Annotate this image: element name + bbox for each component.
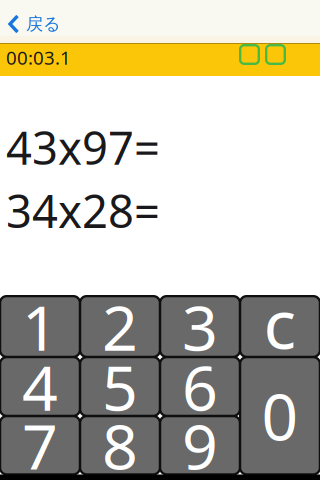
button[interactable]: 7 [0,416,80,474]
staticText: 7 [22,404,58,480]
staticText: 4 [22,345,58,428]
staticText: 9 [182,404,218,480]
staticText: 00:03.1 [6,45,71,70]
staticText: 8 [102,404,138,480]
staticText: 0 [261,373,298,458]
button[interactable]: 1 [0,296,80,357]
staticText: 1 [22,285,58,368]
button[interactable]: 2 [80,296,160,357]
button[interactable]: 4 [0,357,80,416]
button[interactable]: 3 [160,296,240,357]
button[interactable]: 6 [160,357,240,416]
staticText: 2 [102,285,138,368]
staticText: 6 [182,345,218,428]
staticText: 3 [182,285,218,368]
button[interactable]: 8 [80,416,160,474]
button[interactable]: 0 [240,357,320,474]
staticText: 43x97= [6,117,160,177]
staticText: 戻る [26,13,61,35]
staticText: 5 [102,345,138,428]
button[interactable]: 9 [160,416,240,474]
button[interactable]: 5 [80,357,160,416]
button[interactable]: Back [0,8,61,35]
button[interactable]: c [240,296,320,357]
staticText: 34x28= [6,180,160,240]
staticText: c [263,277,296,368]
